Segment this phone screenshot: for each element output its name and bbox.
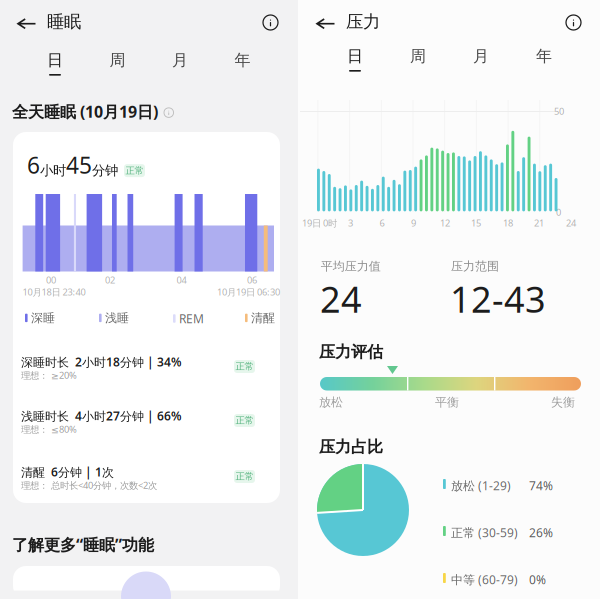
staticText: 理想： 总时长<40分钟，次数<2次	[21, 479, 157, 491]
button[interactable]: 周	[405, 44, 431, 74]
staticText: 清醒 6分钟 | 1次	[21, 464, 114, 480]
staticText: 26%	[529, 524, 553, 540]
staticText: 正常	[125, 165, 143, 176]
staticText: 19日 0时	[302, 217, 337, 229]
staticText: 74%	[529, 477, 553, 493]
staticText: 9	[411, 217, 416, 229]
staticText: 周	[410, 46, 426, 66]
staticText: 02	[105, 274, 115, 286]
staticText: 12-43	[450, 275, 546, 323]
staticText: 深睡	[31, 310, 55, 325]
button[interactable]: 压力	[346, 11, 380, 32]
staticText: 正常	[235, 415, 253, 426]
staticText: 月	[473, 46, 489, 66]
staticText: 周	[109, 50, 125, 70]
staticText: 浅睡时长 4小时27分钟 | 66%	[21, 408, 182, 424]
staticText: 压力范围	[451, 259, 499, 274]
staticText: 月	[172, 50, 188, 70]
staticText: 日	[347, 46, 363, 66]
staticText: 压力占比	[319, 437, 383, 457]
staticText: 50	[554, 105, 564, 117]
staticText: 平衡	[435, 395, 459, 410]
staticText: 10月19日 06:30	[217, 286, 280, 298]
button[interactable]: 年	[229, 48, 255, 78]
staticText: 清醒	[251, 310, 275, 325]
staticText: 0%	[529, 571, 546, 587]
staticText: 全天睡眠 (10月19日)	[12, 101, 158, 122]
button[interactable]: 睡眠	[47, 11, 81, 32]
staticText: 15	[471, 217, 481, 229]
staticText: 日	[47, 50, 63, 70]
staticText: 24	[566, 217, 576, 229]
button[interactable]: 月	[468, 44, 494, 74]
staticText: 正常 (30-59)	[451, 524, 518, 540]
staticText: REM	[179, 310, 204, 326]
staticText: 06	[247, 274, 257, 286]
staticText: 浅睡	[105, 310, 129, 325]
staticText: 中等 (60-79)	[451, 571, 518, 587]
staticText: 放松	[319, 395, 343, 410]
button[interactable]: 年	[531, 44, 557, 74]
staticText: 放松 (1-29)	[451, 477, 511, 493]
staticText: 12	[440, 217, 450, 229]
button[interactable]: Info	[562, 11, 585, 34]
staticText: 压力	[346, 11, 380, 32]
staticText: 年	[234, 50, 250, 70]
staticText: 了解更多“睡眠”功能	[12, 534, 154, 555]
button[interactable]: 周	[104, 48, 130, 78]
button[interactable]: 月	[167, 48, 193, 78]
staticText: 正常	[235, 471, 253, 482]
staticText: 24	[320, 275, 362, 323]
button[interactable]: Back	[312, 14, 339, 33]
staticText: 04	[177, 274, 187, 286]
staticText: 正常	[235, 361, 253, 372]
staticText: 3	[348, 217, 353, 229]
staticText: 21	[534, 217, 544, 229]
staticText: 睡眠	[47, 11, 81, 32]
staticText: 年	[536, 46, 552, 66]
staticText: 压力评估	[319, 342, 383, 362]
staticText: 理想： ≥20%	[21, 369, 77, 381]
button[interactable]: Info	[259, 11, 282, 34]
button[interactable]: 日	[342, 44, 368, 74]
staticText: 平均压力值	[321, 259, 381, 274]
staticText: 深睡时长 2小时18分钟 | 34%	[21, 354, 182, 370]
staticText: 6	[379, 217, 384, 229]
staticText: 理想： ≤80%	[21, 423, 77, 435]
button[interactable]: Back	[13, 14, 40, 33]
staticText: 6小时45分钟	[27, 150, 118, 180]
button[interactable]: 日	[42, 48, 68, 78]
staticText: 00	[46, 274, 56, 286]
staticText: 0	[556, 206, 561, 218]
staticText: 18	[503, 217, 513, 229]
staticText: 10月18日 23:40	[22, 286, 85, 298]
staticText: 失衡	[551, 395, 575, 410]
